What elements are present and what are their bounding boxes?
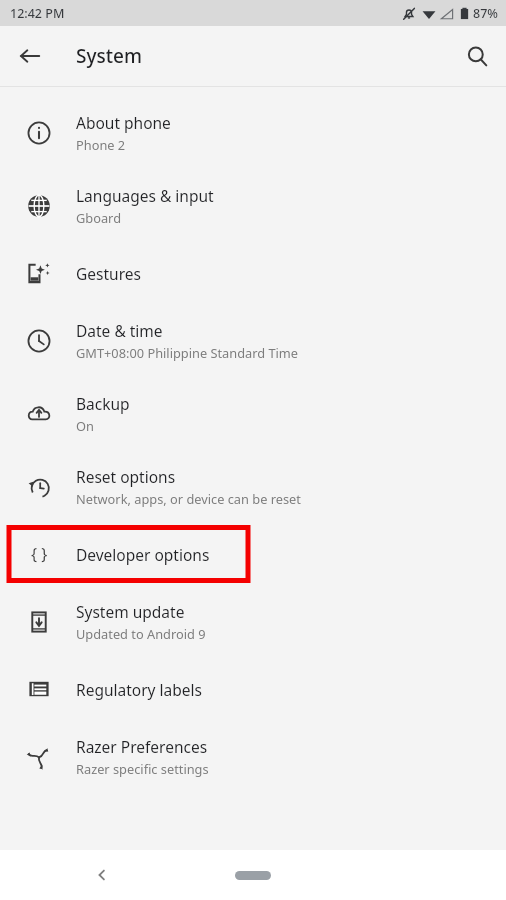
button[interactable]: Home <box>235 871 271 880</box>
button[interactable]: Reset options <box>0 450 506 523</box>
button[interactable]: Date & time <box>0 304 506 377</box>
staticText: System <box>76 43 142 69</box>
staticText: Regulatory labels <box>76 679 202 700</box>
button[interactable]: About phone <box>0 96 506 169</box>
staticText: Developer options <box>76 544 210 565</box>
staticText: 12:42 PM <box>10 5 65 22</box>
button[interactable]: Backup <box>0 377 506 450</box>
staticText: Razer specific settings <box>76 760 209 777</box>
button[interactable]: Search <box>455 34 499 78</box>
staticText: Network, apps, or device can be reset <box>76 490 301 507</box>
button[interactable]: System update <box>0 585 506 658</box>
button[interactable]: Razer Preferences <box>0 720 506 793</box>
staticText: On <box>76 417 94 434</box>
button[interactable]: { } <box>0 523 506 585</box>
staticText: Updated to Android 9 <box>76 625 206 642</box>
staticText: Languages & input <box>76 185 214 206</box>
staticText: Reset options <box>76 466 176 487</box>
staticText: System update <box>76 601 185 622</box>
button[interactable]: Gestures <box>0 242 506 304</box>
button[interactable]: Languages & input <box>0 169 506 242</box>
staticText: Backup <box>76 393 130 414</box>
staticText: { } <box>31 543 48 565</box>
staticText: Date & time <box>76 320 163 341</box>
button[interactable]: Regulatory labels <box>0 658 506 720</box>
staticText: 87% <box>473 5 498 22</box>
staticText: GMT+08:00 Philippine Standard Time <box>76 344 299 361</box>
staticText: Razer Preferences <box>76 736 208 757</box>
button[interactable]: Back <box>8 34 52 78</box>
staticText: About phone <box>76 112 171 133</box>
button[interactable]: Back <box>80 853 124 897</box>
staticText: Gboard <box>76 209 122 226</box>
staticText: Phone 2 <box>76 136 126 153</box>
staticText: Gestures <box>76 263 141 284</box>
